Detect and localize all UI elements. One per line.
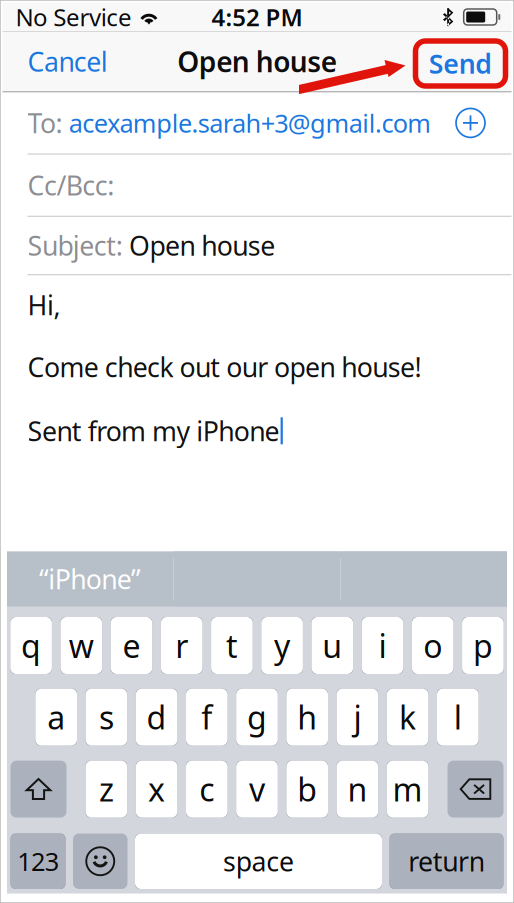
button[interactable]: j: [337, 689, 378, 746]
button[interactable]: y: [261, 617, 303, 674]
staticText: Hi,: [27, 287, 60, 322]
button[interactable]: p: [462, 617, 504, 674]
staticText: y: [274, 624, 290, 667]
staticText: i: [378, 624, 386, 667]
staticText: e: [122, 624, 140, 667]
staticText: Open house: [177, 43, 337, 80]
button[interactable]: d: [136, 689, 177, 746]
staticText: d: [147, 696, 167, 738]
staticText: p: [473, 624, 493, 667]
button[interactable]: x: [136, 761, 177, 818]
button[interactable]: e: [111, 617, 152, 674]
button[interactable]: space: [135, 833, 382, 889]
staticText: Come check out our open house!: [27, 349, 422, 384]
staticText: g: [247, 696, 267, 738]
staticText: h: [297, 696, 317, 738]
staticText: q: [21, 624, 41, 667]
staticText: n: [347, 768, 367, 810]
staticText: Sent from my iPhone: [27, 413, 280, 448]
button[interactable]: n: [337, 761, 378, 818]
button[interactable]: Add contact: [453, 106, 487, 140]
staticText: l: [454, 696, 462, 738]
button[interactable]: Send: [415, 37, 511, 86]
staticText: m: [393, 768, 423, 810]
staticText: s: [99, 696, 114, 738]
staticText: No Service: [15, 1, 132, 33]
staticText: Open house: [129, 228, 275, 263]
staticText: t: [226, 624, 238, 667]
button[interactable]: l: [437, 689, 479, 746]
button[interactable]: a: [35, 689, 77, 746]
button[interactable]: s: [86, 689, 127, 746]
staticText: 123: [17, 844, 59, 878]
staticText: o: [423, 624, 442, 667]
button[interactable]: h: [286, 689, 328, 746]
button[interactable]: g: [236, 689, 278, 746]
button[interactable]: Emoji: [73, 833, 127, 889]
staticText: j: [353, 696, 361, 738]
staticText: v: [249, 768, 265, 810]
staticText: x: [148, 768, 165, 810]
button[interactable]: v: [236, 761, 278, 818]
staticText: return: [408, 843, 485, 879]
staticText: c: [199, 768, 214, 810]
button[interactable]: w: [60, 617, 102, 674]
staticText: f: [201, 696, 212, 738]
staticText: Cc/Bcc:: [27, 167, 114, 203]
button[interactable]: Delete: [447, 761, 503, 818]
button[interactable]: c: [186, 761, 228, 818]
staticText: u: [322, 624, 342, 667]
button[interactable]: Shift: [10, 761, 66, 818]
staticText: a: [47, 696, 65, 738]
staticText: “iPhone”: [39, 561, 141, 597]
staticText: Cancel: [27, 44, 108, 79]
button[interactable]: k: [387, 689, 428, 746]
staticText: w: [69, 624, 94, 667]
button[interactable]: m: [387, 761, 428, 818]
staticText: Send: [429, 46, 492, 81]
staticText: b: [297, 768, 317, 810]
staticText: r: [175, 624, 188, 667]
button[interactable]: f: [186, 689, 228, 746]
button[interactable]: b: [286, 761, 328, 818]
button[interactable]: “iPhone”: [7, 551, 173, 606]
button[interactable]: r: [161, 617, 202, 674]
button[interactable]: 123: [10, 833, 65, 889]
staticText: acexample.sarah+3@gmail.com: [69, 106, 431, 140]
button[interactable]: Cancel: [2, 32, 122, 90]
button[interactable]: t: [211, 617, 253, 674]
staticText: 4:52 PM: [212, 1, 302, 33]
button[interactable]: u: [311, 617, 353, 674]
button[interactable]: z: [86, 761, 127, 818]
staticText: Subject:: [27, 228, 129, 263]
staticText: To:: [27, 105, 69, 141]
button[interactable]: q: [10, 617, 52, 674]
staticText: z: [99, 768, 114, 810]
button[interactable]: i: [362, 617, 403, 674]
button[interactable]: o: [412, 617, 453, 674]
staticText: k: [399, 696, 416, 738]
button[interactable]: return: [389, 833, 503, 889]
staticText: space: [223, 843, 294, 879]
